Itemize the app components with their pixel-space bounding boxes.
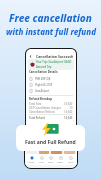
staticText: with instant full refund [6, 26, 96, 37]
staticText: ₹4,640 [64, 102, 73, 106]
staticText: Flight 6E-2109 [35, 83, 53, 87]
staticText: Cancellation Successful [36, 54, 73, 59]
staticText: PNR 2891QK [35, 77, 51, 81]
staticText: Cancellation Details [29, 70, 58, 74]
staticText: Trips [39, 161, 44, 164]
staticText: Assured Trip [36, 65, 52, 69]
staticText: Offers [57, 161, 64, 164]
staticText: Home [28, 161, 35, 164]
staticText: Fast and Full Refund [25, 139, 76, 146]
button[interactable]: Fast and Full Refund [16, 125, 85, 151]
button[interactable]: Home [27, 156, 36, 164]
staticText: Refund Breakup [29, 97, 53, 101]
button[interactable]: Offers [56, 156, 65, 164]
staticText: GST Cancellation charges [29, 106, 61, 110]
other: Back [29, 55, 32, 58]
staticText: Train [48, 161, 54, 164]
staticText: Cancellation Refund [29, 110, 55, 114]
button[interactable]: Trips [38, 156, 45, 164]
staticText: ₹4,640 [64, 116, 73, 120]
staticText: ₹4,640 [64, 110, 73, 114]
staticText: Total Refund [29, 116, 45, 120]
staticText: More [68, 161, 74, 164]
staticText: Goa Airport [35, 89, 50, 93]
button[interactable]: Train [47, 156, 55, 164]
staticText: - ₹0 [68, 106, 73, 110]
staticText: Free cancellation [9, 11, 92, 25]
button[interactable]: More [67, 156, 75, 164]
staticText: Your Trip: Goa Airport ₹4640 with [36, 60, 72, 64]
staticText: Total Fare [29, 102, 42, 106]
